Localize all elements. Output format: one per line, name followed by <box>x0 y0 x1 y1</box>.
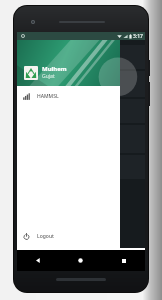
staticText: Logout <box>37 233 54 240</box>
button[interactable]: Home <box>59 250 102 271</box>
button[interactable]: …Plant …s <box>17 125 145 153</box>
button[interactable]: Logout <box>17 229 120 243</box>
staticText: …Input <box>19 81 36 88</box>
button[interactable]: …put <box>17 99 145 123</box>
button[interactable]: HAMMSL <box>17 89 120 103</box>
button[interactable]: …utput <box>17 155 145 179</box>
staticText: 3:17 <box>133 33 143 40</box>
staticText: …works <box>19 54 38 61</box>
staticText: Gujat <box>42 73 55 80</box>
button[interactable]: …Input <box>17 71 145 97</box>
staticText: Mulhem <box>42 65 67 73</box>
button[interactable]: Back <box>17 250 59 271</box>
staticText: HAMMSL <box>37 93 59 100</box>
button[interactable]: …works <box>17 45 145 69</box>
button[interactable]: Recent apps <box>102 250 145 271</box>
button[interactable]: Mulhem <box>17 40 120 86</box>
